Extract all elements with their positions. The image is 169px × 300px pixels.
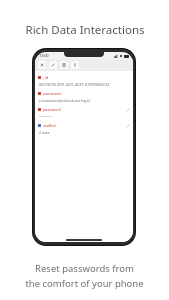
button[interactable]: Delete [60,61,68,69]
staticText: ssoRcd [43,123,56,128]
staticText: 2 uses [39,130,50,135]
staticText: password [43,107,61,112]
staticText: •••••••••• [39,114,53,119]
button[interactable]: More [71,61,79,69]
button[interactable]: password [35,106,133,113]
staticText: 14:00 [39,53,49,58]
button[interactable]: Close [38,61,46,69]
staticText: Rich Data Interactions [25,22,145,38]
button[interactable]: ssoRcd [35,122,133,129]
button[interactable]: username [35,90,133,97]
staticText: username [43,91,62,96]
button[interactable]: _id [35,74,133,81]
staticText: 86C09D94-0F01-423C-AC87-D7B9F8406C82 [39,82,110,87]
staticText: the comfort of your phone [25,277,144,290]
staticText: Reset passwords from [35,262,134,275]
button[interactable]: Edit [49,61,57,69]
staticText: _id [43,75,49,80]
staticText: j.smiwolves@outlook.wering.nl [39,98,90,103]
